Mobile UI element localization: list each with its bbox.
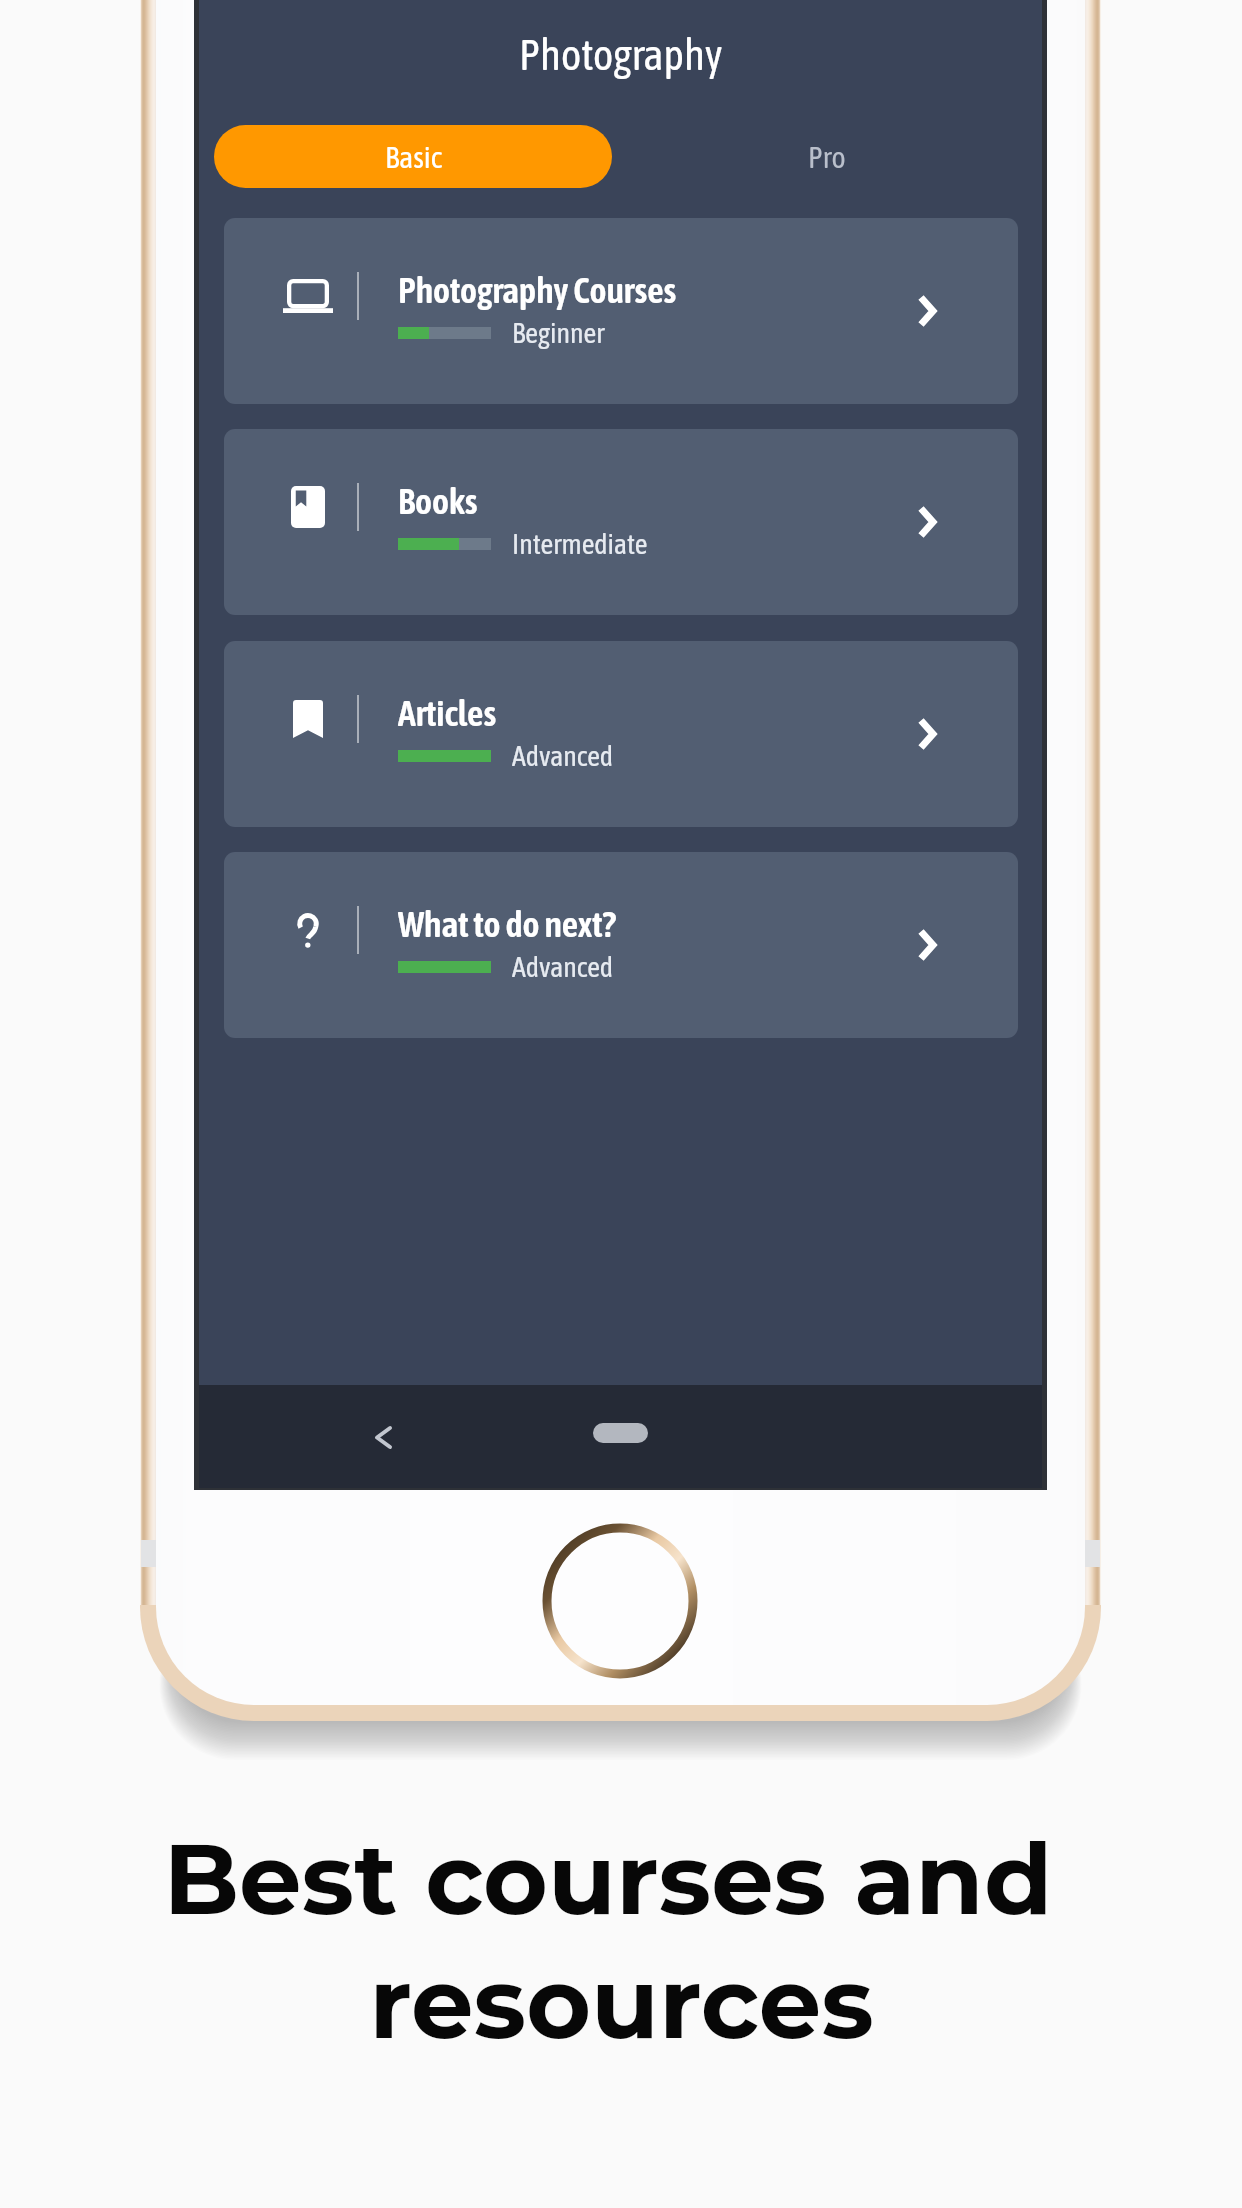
staticText: Pro — [808, 140, 846, 174]
staticText: What to do next? — [398, 903, 616, 944]
staticText: Beginner — [512, 317, 605, 349]
button[interactable]: Pro — [612, 125, 1042, 188]
button[interactable]: Open Books — [913, 502, 941, 542]
staticText: Books — [398, 480, 478, 521]
staticText: Best courses and — [163, 1818, 1053, 1939]
staticText: Advanced — [512, 740, 614, 772]
staticText: resources — [369, 1942, 874, 2063]
button[interactable]: Basic — [214, 125, 612, 188]
staticText: Advanced — [512, 951, 614, 983]
button[interactable]: Open What to do next? — [913, 925, 941, 965]
staticText: Articles — [398, 692, 497, 733]
button[interactable]: Home — [593, 1423, 648, 1443]
button[interactable]: Open Photography Courses — [913, 291, 941, 331]
button[interactable]: What to do next? — [224, 852, 1018, 1038]
button[interactable]: Back — [345, 1399, 421, 1475]
staticText: Photography Courses — [398, 269, 677, 310]
staticText: Photography — [519, 30, 723, 79]
button[interactable]: Books — [224, 429, 1018, 615]
button[interactable]: Open Articles — [913, 714, 941, 754]
button[interactable]: Photography Courses — [224, 218, 1018, 404]
button[interactable]: Articles — [224, 641, 1018, 827]
staticText: Intermediate — [512, 528, 648, 560]
staticText: Basic — [385, 140, 442, 174]
